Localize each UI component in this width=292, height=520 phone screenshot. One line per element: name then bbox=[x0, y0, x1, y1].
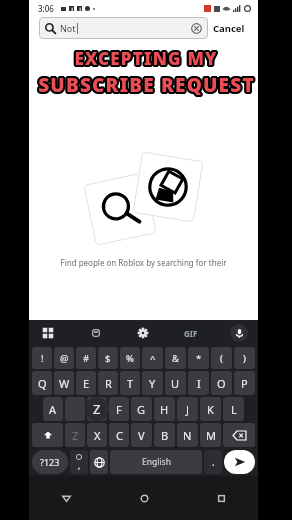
staticText: SUBSCRIBE REQUEST bbox=[39, 71, 256, 97]
staticText: EXCEPTING MY bbox=[74, 45, 218, 68]
staticText: EXCEPTING MY bbox=[74, 47, 218, 70]
staticText: E bbox=[83, 376, 90, 391]
button[interactable]: ^ bbox=[142, 347, 163, 369]
button[interactable]: @ bbox=[54, 347, 74, 369]
staticText: N bbox=[183, 428, 192, 443]
staticText: EXCEPTING MY bbox=[75, 45, 219, 68]
staticText: SUBSCRIBE REQUEST bbox=[39, 72, 256, 98]
button[interactable]: O bbox=[211, 371, 232, 395]
staticText: GIF bbox=[184, 328, 198, 339]
button[interactable]: Recents bbox=[210, 487, 232, 509]
button[interactable]: Clear bbox=[191, 23, 202, 34]
staticText: R bbox=[105, 376, 112, 391]
staticText: SUBSCRIBE REQUEST bbox=[39, 73, 256, 99]
button[interactable]: ! bbox=[32, 347, 52, 369]
button[interactable]: P bbox=[234, 371, 255, 395]
staticText: ?123 bbox=[40, 456, 60, 468]
staticText: . bbox=[212, 455, 215, 469]
staticText: EXCEPTING MY bbox=[76, 46, 220, 69]
staticText: ) bbox=[243, 352, 246, 365]
button[interactable]: ?123 bbox=[32, 450, 68, 474]
staticText: EXCEPTING MY bbox=[73, 47, 217, 70]
staticText: O bbox=[217, 376, 226, 391]
staticText: SUBSCRIBE REQUEST bbox=[39, 74, 256, 100]
button[interactable]: Z bbox=[65, 423, 85, 447]
staticText: Cancel bbox=[213, 22, 245, 35]
staticText: Y bbox=[149, 376, 156, 391]
button[interactable]: ) bbox=[234, 347, 255, 369]
button[interactable]: A bbox=[43, 397, 63, 421]
staticText: English bbox=[142, 456, 171, 468]
button[interactable]: Home bbox=[133, 487, 155, 509]
staticText: SUBSCRIBE REQUEST bbox=[37, 73, 254, 99]
button[interactable]: Cancel bbox=[208, 19, 250, 38]
staticText: Find people on Roblox by searching for t… bbox=[37, 257, 250, 268]
staticText: SUBSCRIBE REQUEST bbox=[38, 72, 255, 98]
button[interactable]: X bbox=[87, 423, 107, 447]
button[interactable]: Back bbox=[55, 487, 77, 509]
button[interactable]: # bbox=[76, 347, 96, 369]
staticText: SUBSCRIBE REQUEST bbox=[38, 73, 255, 99]
staticText: ^ bbox=[150, 352, 156, 365]
button[interactable]: Send bbox=[224, 450, 255, 474]
button[interactable]: L bbox=[223, 397, 244, 421]
button[interactable]: E bbox=[76, 371, 96, 395]
staticText: % bbox=[126, 352, 134, 365]
button[interactable]: Backspace bbox=[223, 423, 255, 447]
staticText: EXCEPTING MY bbox=[75, 46, 219, 69]
staticText: EXCEPTING MY bbox=[74, 49, 218, 72]
staticText: $ bbox=[105, 352, 111, 365]
staticText: Not bbox=[60, 22, 76, 34]
staticText: EXCEPTING MY bbox=[73, 46, 217, 69]
button[interactable]: Change language bbox=[90, 450, 108, 474]
button[interactable]: Q bbox=[32, 371, 52, 395]
button[interactable]: ( bbox=[211, 347, 232, 369]
staticText: ( bbox=[220, 352, 223, 365]
staticText: B bbox=[161, 428, 169, 443]
button[interactable]: Emoji and comma bbox=[70, 450, 88, 474]
button[interactable]: GIF bbox=[181, 325, 201, 342]
button[interactable]: * bbox=[188, 347, 209, 369]
button[interactable]: D bbox=[87, 397, 107, 421]
button[interactable]: English bbox=[110, 450, 202, 474]
staticText: V bbox=[138, 428, 145, 443]
staticText: SUBSCRIBE REQUEST bbox=[36, 71, 253, 97]
staticText: D bbox=[93, 402, 102, 417]
button[interactable]: W bbox=[54, 371, 74, 395]
staticText: EXCEPTING MY bbox=[75, 48, 219, 71]
staticText: * bbox=[196, 352, 202, 365]
staticText: EXCEPTING MY bbox=[74, 46, 218, 69]
button[interactable]: K bbox=[200, 397, 221, 421]
button[interactable]: J bbox=[177, 397, 198, 421]
button[interactable]: % bbox=[120, 347, 140, 369]
button[interactable]: F bbox=[109, 397, 129, 421]
button[interactable]: U bbox=[165, 371, 186, 395]
staticText: SUBSCRIBE REQUEST bbox=[40, 72, 257, 98]
button[interactable]: T bbox=[120, 371, 140, 395]
button[interactable]: $ bbox=[98, 347, 118, 369]
button[interactable]: C bbox=[109, 423, 129, 447]
button[interactable]: Stickers bbox=[87, 324, 105, 342]
button[interactable]: H bbox=[154, 397, 175, 421]
staticText: Z bbox=[93, 400, 101, 418]
button[interactable]: Shift bbox=[32, 423, 63, 447]
button[interactable]: V bbox=[131, 423, 152, 447]
button[interactable]: Y bbox=[142, 371, 163, 395]
button[interactable]: Voice input bbox=[230, 324, 248, 342]
staticText: EXCEPTING MY bbox=[73, 49, 217, 72]
button[interactable]: & bbox=[165, 347, 186, 369]
button[interactable]: Not bbox=[39, 17, 208, 39]
button[interactable]: I bbox=[188, 371, 209, 395]
button[interactable]: R bbox=[98, 371, 118, 395]
button[interactable]: M bbox=[200, 423, 221, 447]
button[interactable]: Clipboard bbox=[39, 324, 57, 342]
button[interactable]: G bbox=[131, 397, 152, 421]
button[interactable]: B bbox=[154, 423, 175, 447]
staticText: L bbox=[231, 402, 237, 417]
staticText: SUBSCRIBE REQUEST bbox=[40, 71, 257, 97]
button[interactable]: . bbox=[204, 450, 222, 474]
button[interactable]: Settings bbox=[134, 324, 152, 342]
button[interactable]: N bbox=[177, 423, 198, 447]
